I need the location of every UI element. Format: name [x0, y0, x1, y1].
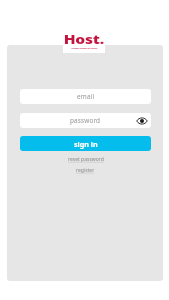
- staticText: password: [70, 116, 101, 125]
- staticText: email: [77, 92, 95, 101]
- button[interactable]: Show password: [136, 115, 148, 127]
- staticText: register: [76, 167, 95, 174]
- button[interactable]: sign in: [20, 136, 151, 151]
- staticText: hospitality management software: [71, 47, 98, 50]
- staticText: reset password: [68, 156, 104, 163]
- staticText: Host.: [64, 31, 104, 47]
- staticText: sign in: [74, 139, 98, 149]
- button[interactable]: reset password: [64, 155, 108, 164]
- button[interactable]: email: [20, 89, 151, 104]
- button[interactable]: password: [20, 113, 151, 128]
- button[interactable]: register: [72, 166, 99, 175]
